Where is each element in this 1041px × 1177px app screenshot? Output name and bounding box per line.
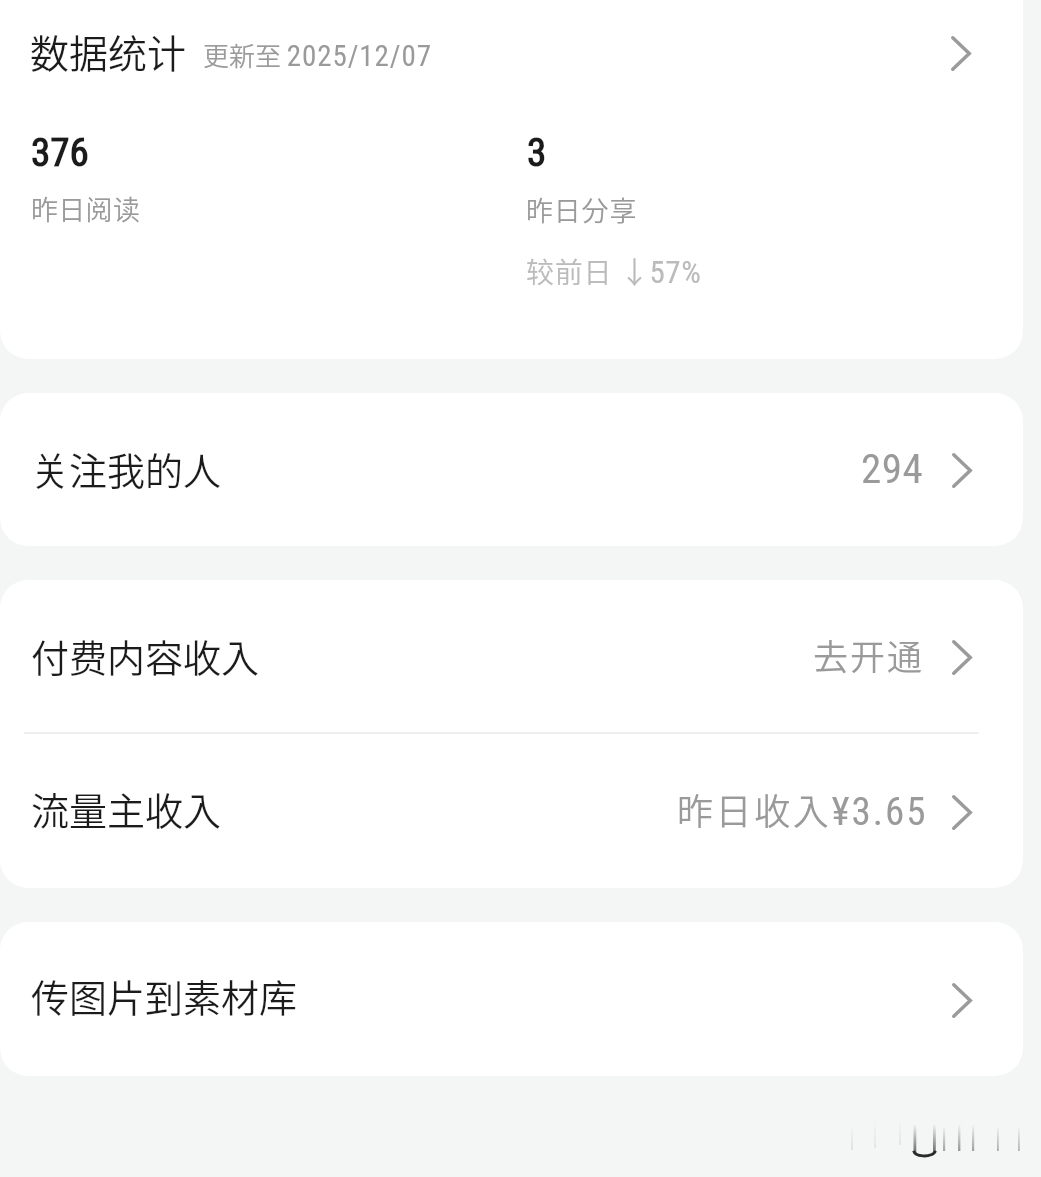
button[interactable]: 传图片到素材库 [0, 922, 1023, 1076]
staticText: 付费内容收入 [31, 628, 260, 683]
staticText: 376 [31, 130, 89, 176]
staticText: 昨日阅读 [31, 189, 141, 228]
button[interactable]: 关注我的人 [0, 393, 1023, 546]
staticText: 流量主收入 [31, 781, 222, 836]
button[interactable]: 流量主收入 [0, 734, 1023, 888]
staticText: 较前日 ↓57% [526, 248, 702, 291]
button[interactable]: 付费内容收入 [0, 580, 1023, 732]
staticText: 更新至 2025/12/07 [203, 36, 432, 74]
staticText: 昨日收入¥3.65 [677, 783, 928, 835]
staticText: 294 [861, 445, 924, 493]
staticText: 传图片到素材库 [31, 968, 298, 1023]
staticText: 数据统计 [30, 23, 187, 79]
staticText: 昨日分享 [526, 190, 638, 229]
staticText: 关注我的人 [31, 441, 222, 496]
staticText: 3 [527, 130, 547, 176]
button[interactable]: 数据统计 [0, 0, 1023, 107]
staticText: 去开通 [813, 629, 925, 680]
